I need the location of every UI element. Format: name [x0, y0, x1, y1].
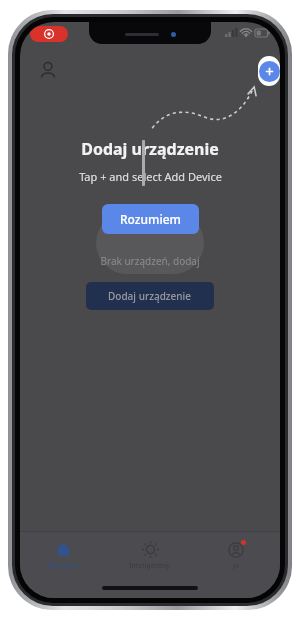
staticText: Tap + and select Add Device [79, 169, 222, 184]
button[interactable]: Add device [258, 56, 280, 86]
button[interactable]: Rozumiem [102, 204, 199, 234]
staticText: Dodaj urządzenie [108, 289, 192, 303]
staticText: Ja [233, 561, 240, 571]
button[interactable]: Ja [193, 532, 280, 578]
staticText: Inteligentny [129, 561, 170, 571]
button[interactable]: Dodaj urządzenie [86, 282, 214, 310]
staticText: Dodaj urządzenie [81, 138, 219, 160]
button[interactable]: Mój dom [20, 532, 106, 578]
staticText: Brak urządzeń, dodaj [100, 254, 200, 268]
staticText: Rozumiem [120, 211, 181, 227]
button[interactable]: Profile [32, 54, 64, 86]
staticText: Mój dom [48, 561, 78, 571]
